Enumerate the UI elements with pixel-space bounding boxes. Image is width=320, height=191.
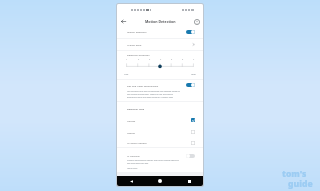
button[interactable]: Toggle [186,83,195,87]
button[interactable]: Home [156,177,164,185]
button[interactable]: Human [117,114,203,126]
button[interactable]: All Other Motions [117,138,203,147]
button[interactable]: Activity Zone [117,39,203,50]
staticText: Vehicle [127,131,135,134]
staticText: tom's [282,168,307,180]
button[interactable]: AI Tracking [117,148,203,163]
staticText: Human [127,119,136,122]
staticText: Motion Detection [127,30,147,33]
button[interactable]: Checkbox [191,141,195,145]
button[interactable]: Back [127,177,135,185]
button[interactable]: Toggle [186,30,195,34]
staticText: 2 [138,58,140,61]
staticText: 5 [171,58,173,61]
staticText: Camera automatically adjusts and tracks … [127,159,181,165]
staticText: Motion Detection [145,19,176,24]
staticText: Day and Night Optimization [127,84,159,87]
button[interactable]: Day and Night Optimization [117,80,203,90]
staticText: Detection sensitivity [127,53,150,56]
button[interactable]: Back [119,17,128,26]
staticText: 3 [149,58,151,61]
button[interactable]: Vehicle [117,126,203,138]
staticText: Detection Type [127,107,145,110]
button[interactable]: Motion Detection [117,25,203,38]
staticText: The resulting color will be optimized an… [127,90,181,99]
button[interactable]: Help [192,17,201,26]
button[interactable]: Checkbox [191,118,195,122]
staticText: Activity Zone [127,43,142,46]
button[interactable]: Checkbox [191,130,195,134]
staticText: 4 [160,58,162,61]
staticText: guide [288,178,313,190]
staticText: 1 [126,58,128,61]
button[interactable]: Recents [185,177,193,185]
staticText: All Other Motions [127,141,147,144]
staticText: 6 [182,58,184,61]
staticText: AI Tracking [127,154,140,157]
staticText: High [191,73,196,76]
staticText: Low [124,73,129,76]
button[interactable]: Toggle [186,154,195,158]
staticText: 7 [193,58,195,61]
button[interactable]: Learn more [127,167,138,170]
